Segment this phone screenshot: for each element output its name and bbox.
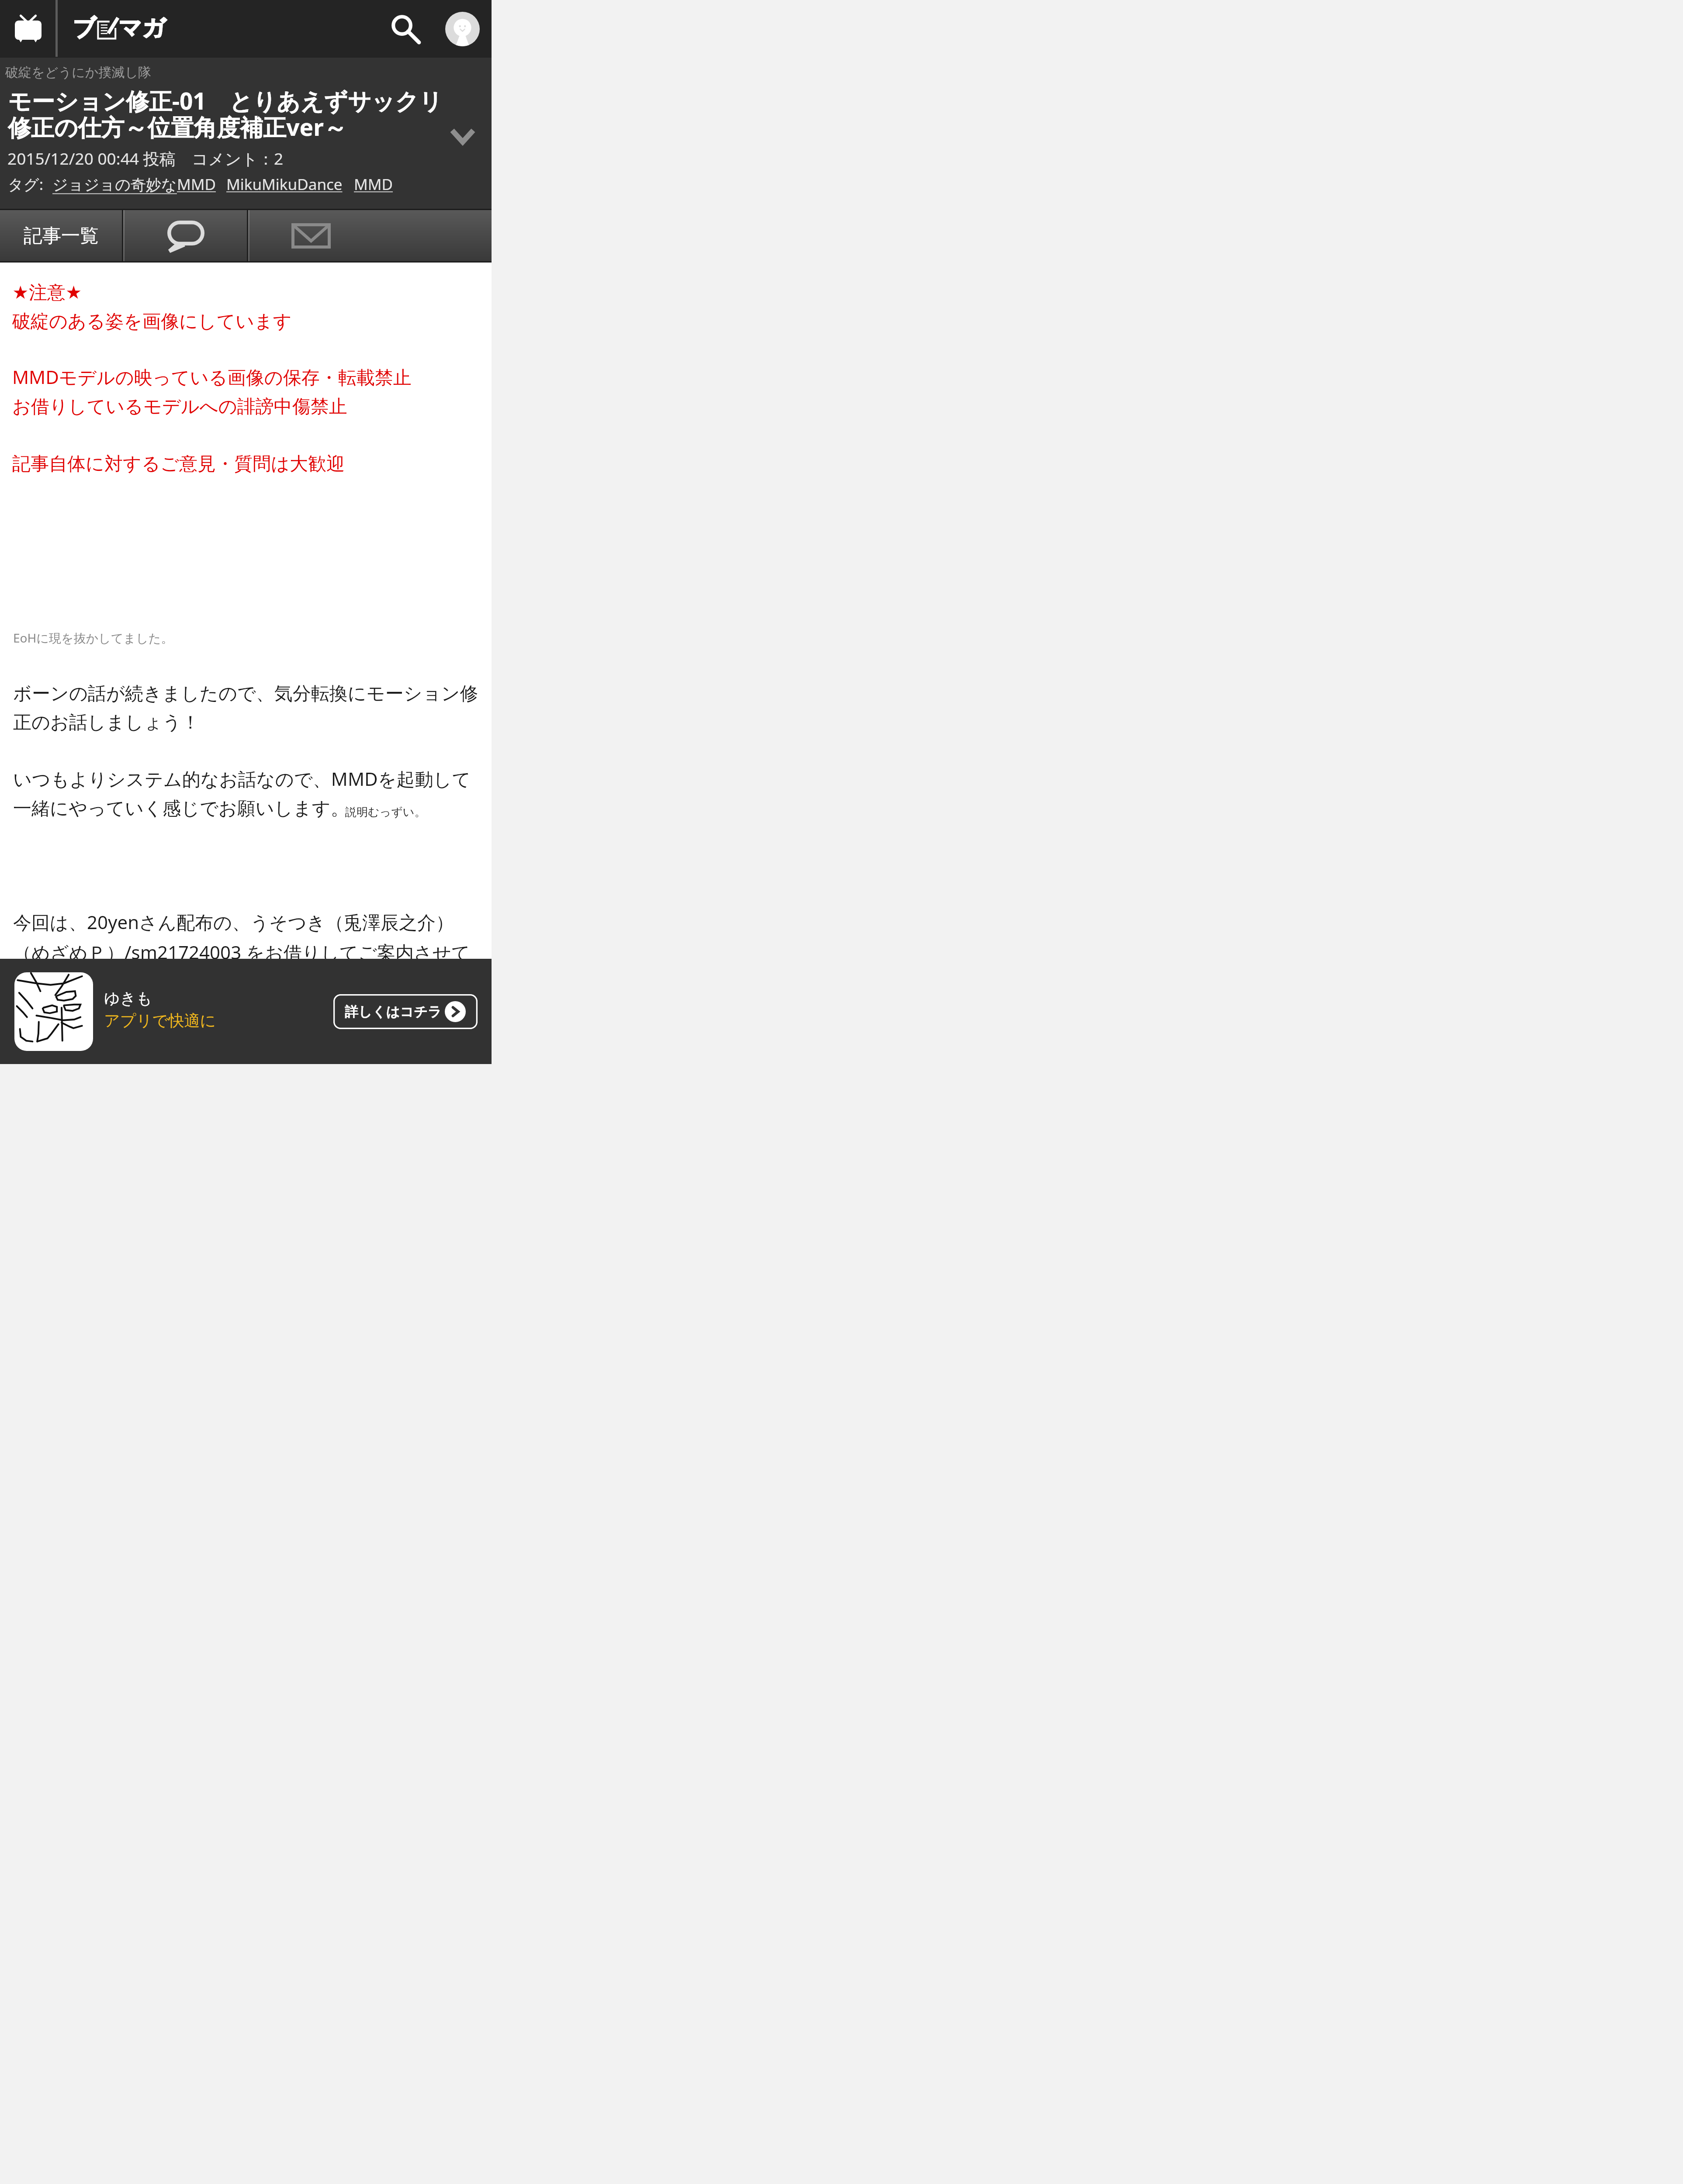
staticText: いつもよりシステム的なお話なので、MMDを起動して 一緒にやっていく感じでお願い…	[13, 766, 471, 820]
staticText: マガ	[118, 14, 166, 43]
button[interactable]: Expand article info	[441, 112, 485, 162]
staticText: タグ:	[8, 174, 44, 195]
button[interactable]: Account	[434, 0, 490, 58]
button[interactable]: niconico	[0, 0, 56, 58]
staticText: 破綻をどうにか撲滅し隊	[5, 64, 152, 81]
staticText: アプリで快適に	[104, 1011, 216, 1030]
staticText: 説明むっずい。	[345, 805, 426, 819]
staticText: MMDモデルの映っている画像の保存・転載禁止 お借りしているモデルへの誹謗中傷禁…	[12, 364, 412, 418]
button[interactable]: MMD	[354, 174, 393, 195]
button[interactable]: MikuMikuDance	[226, 174, 343, 195]
button[interactable]: ジョジョの奇妙なMMD	[52, 174, 216, 195]
button[interactable]: Messages	[249, 209, 373, 263]
button[interactable]: 記事一覧	[0, 209, 122, 263]
button[interactable]: 詳しくはコチラ	[333, 994, 478, 1029]
button[interactable]: Search	[377, 0, 434, 58]
button[interactable]: Comments	[125, 209, 247, 263]
staticText: 今回は、20yenさん配布の、うそつき（兎澤辰之介）（めざめＰ）/sm21724…	[13, 909, 487, 964]
staticText: 詳しくはコチラ	[345, 1003, 442, 1020]
staticText: ブ	[73, 14, 97, 43]
staticText: ボーンの話が続きましたので、気分転換にモーション修正のお話しましょう！	[13, 682, 487, 734]
staticText: 記事一覧	[24, 224, 99, 248]
staticText: モーション修正-01 とりあえずサックリ修正の仕方～位置角度補正ver～	[8, 85, 449, 142]
staticText: ゆきも	[104, 988, 152, 1008]
staticText: ★注意★ 破綻のある姿を画像にしています	[12, 281, 292, 333]
staticText: 記事自体に対するご意見・質問は大歓迎	[12, 453, 345, 476]
staticText: 2015/12/20 00:44 投稿 コメント：2	[7, 147, 284, 169]
staticText: EoHに現を抜かしてました。	[13, 629, 173, 646]
button[interactable]: ゆきも	[0, 959, 492, 1064]
